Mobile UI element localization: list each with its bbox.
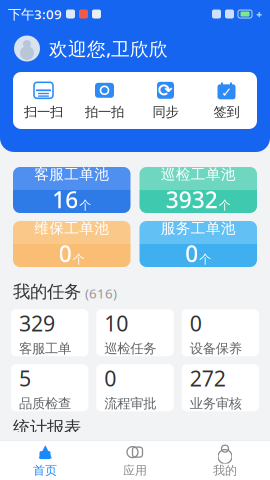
staticText: 签到 [213,104,239,120]
button[interactable]: 272 [182,364,259,411]
staticText: 0 [190,309,202,337]
button[interactable]: 维保工单池 [13,221,130,267]
button[interactable]: 巡检工单池 [139,167,257,213]
staticText: 10 [104,309,128,337]
staticText: 我的 [213,463,237,478]
staticText: 首页 [33,463,57,478]
button[interactable]: ▲ [0,441,90,480]
staticText: 巡检工单池 [161,165,236,183]
staticText: 个 [79,198,91,212]
button[interactable]: 10 [96,309,174,356]
button[interactable]: 客服工单池 [13,167,130,213]
button[interactable]: ✓ [196,72,257,129]
staticText: 0 [185,238,198,269]
staticText: 维保工单池 [34,219,109,237]
staticText: 0 [104,364,116,392]
staticText: 个 [199,252,211,266]
button[interactable]: 服务工单池 [139,221,257,267]
staticText: 业务审核 [190,395,242,412]
staticText: 扫一扫 [24,104,63,120]
staticText: 5 [19,364,31,392]
button[interactable]: 我的 [180,441,270,480]
staticText: 拍一拍 [85,104,124,120]
staticText: ✓ [221,85,232,100]
button[interactable]: 329 [11,309,88,356]
staticText: 0 [59,238,72,269]
staticText: 统计报表 [13,417,81,438]
staticText: ⟳ [158,80,173,100]
staticText: 设备保养 [190,340,242,357]
staticText: 个 [73,252,85,266]
staticText: 3932 [166,184,218,215]
button[interactable]: 0 [96,364,174,411]
staticText: 我的任务 [13,281,81,302]
staticText: 服务工单池 [161,219,236,237]
staticText: 客服工单池 [34,165,109,183]
staticText: 272 [190,364,226,392]
staticText: 品质检查 [19,395,71,412]
staticText: ▲ [38,440,51,460]
staticText: 个 [219,198,231,212]
button[interactable]: 0 [182,309,259,356]
staticText: (616) [85,285,117,302]
staticText: 同步 [152,104,178,120]
staticText: 巡检任务 [104,340,156,357]
staticText: 16 [52,184,78,215]
button[interactable]: 拍一拍 [74,72,135,129]
staticText: 应用 [123,463,147,478]
staticText: + [256,7,262,21]
staticText: 下午3:09 [8,5,62,23]
button[interactable]: 扫一扫 [13,72,74,129]
staticText: 客服工单 [19,340,71,357]
staticText: 欢迎您,卫欣欣 [49,36,168,61]
staticText: 329 [19,309,55,337]
staticText: 流程审批 [104,395,156,412]
button[interactable]: 5 [11,364,88,411]
button[interactable]: ⟳ [135,72,196,129]
button[interactable]: 应用 [90,441,180,480]
